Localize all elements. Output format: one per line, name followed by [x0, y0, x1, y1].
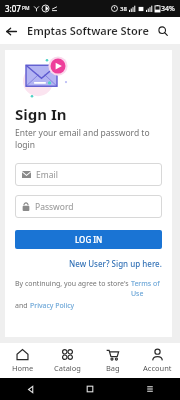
- button[interactable]: Home: [60, 378, 120, 400]
- button[interactable]: Privacy Policy: [30, 301, 75, 311]
- button[interactable]: New User? Sign up here.: [69, 258, 162, 269]
- button[interactable]: Catalog: [45, 343, 90, 378]
- staticText: 34%: [161, 4, 175, 14]
- button[interactable]: Home: [0, 343, 45, 378]
- button[interactable]: Recents: [120, 378, 180, 400]
- staticText: Emptas Software Store: [27, 23, 149, 38]
- staticText: and: [15, 301, 30, 311]
- staticText: Catalog: [54, 363, 81, 373]
- staticText: Email: [36, 169, 58, 181]
- button[interactable]: Bag: [90, 343, 135, 378]
- staticText: Sign In: [15, 104, 67, 124]
- staticText: Terms of Use: [131, 279, 162, 299]
- staticText: PM: [22, 5, 30, 12]
- staticText: Enter your email and password to login: [15, 127, 162, 151]
- button[interactable]: Back: [0, 20, 22, 42]
- staticText: Bag: [106, 363, 120, 373]
- button[interactable]: Email: [15, 163, 162, 186]
- staticText: 38: [120, 5, 127, 13]
- staticText: 3:07: [5, 3, 21, 14]
- staticText: Password: [35, 201, 74, 213]
- button[interactable]: LOG IN: [15, 230, 162, 249]
- button[interactable]: Account: [135, 343, 180, 378]
- button[interactable]: Password: [15, 195, 162, 218]
- staticText: Privacy Policy: [30, 301, 75, 311]
- button[interactable]: Terms of Use: [131, 279, 162, 299]
- staticText: New User? Sign up here.: [69, 258, 162, 269]
- button[interactable]: Back: [0, 378, 60, 400]
- button[interactable]: Search: [151, 19, 175, 43]
- staticText: LOG IN: [75, 234, 103, 245]
- staticText: By continuing, you agree to store's: [15, 279, 131, 289]
- staticText: Account: [143, 363, 172, 373]
- staticText: Home: [12, 363, 34, 373]
